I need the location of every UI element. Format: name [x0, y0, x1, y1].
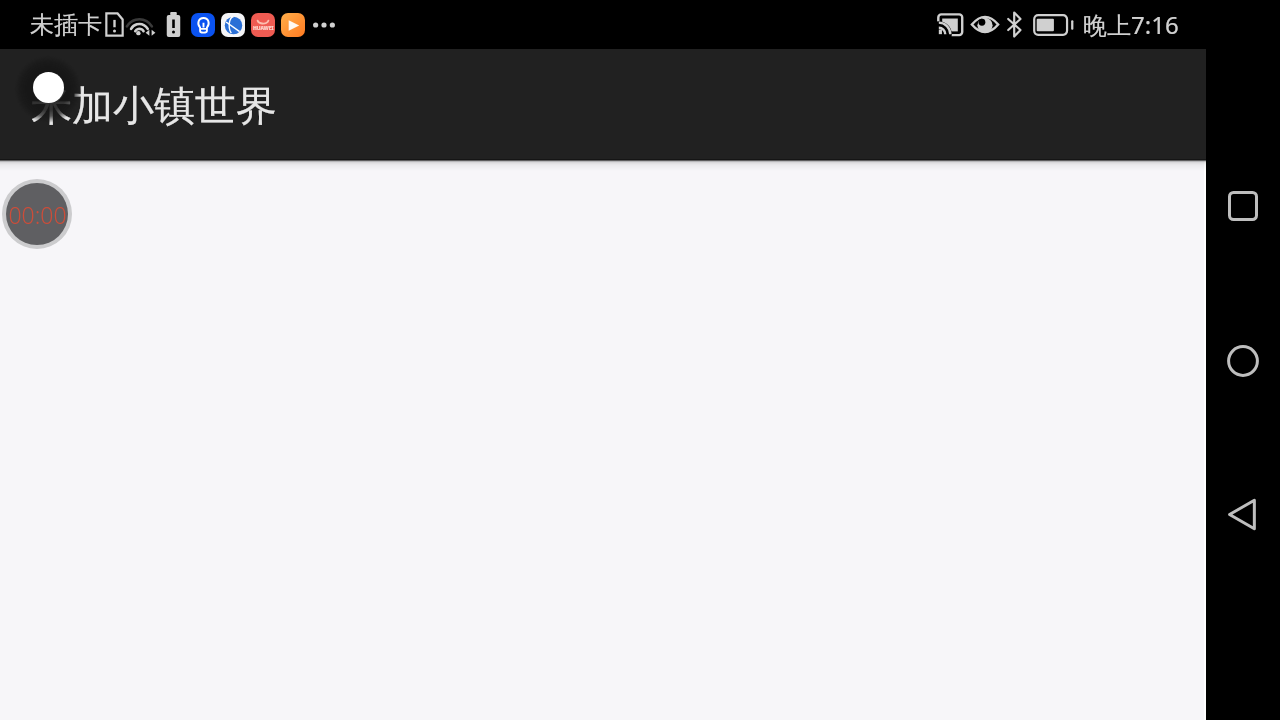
- staticText: 米加小镇世界: [31, 81, 277, 133]
- staticText: 未插卡: [30, 10, 102, 40]
- button[interactable]: Floating assistant bubble: [33, 72, 64, 103]
- button[interactable]: Home: [1206, 324, 1280, 398]
- staticText: 00:00: [8, 199, 67, 230]
- staticText: HUAWEI: [253, 25, 274, 32]
- staticText: 晚上7:16: [1083, 8, 1179, 41]
- button[interactable]: Recent apps: [1206, 169, 1280, 243]
- button[interactable]: Timer overlay: [6, 183, 68, 245]
- button[interactable]: Back: [1206, 477, 1280, 551]
